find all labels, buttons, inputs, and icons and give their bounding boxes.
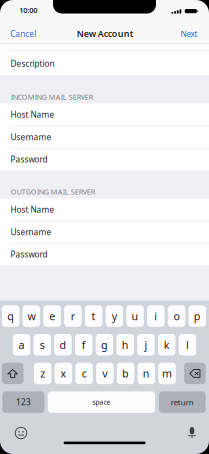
- staticText: u: [132, 309, 139, 323]
- button[interactable]: d: [54, 334, 72, 355]
- button[interactable]: t: [85, 305, 102, 327]
- staticText: Host Name: [11, 109, 55, 120]
- button[interactable]: o: [168, 305, 185, 327]
- staticText: l: [186, 337, 189, 352]
- staticText: t: [92, 309, 96, 323]
- staticText: e: [49, 309, 55, 323]
- button[interactable]: p: [189, 305, 206, 327]
- staticText: p: [194, 309, 201, 323]
- staticText: Next: [180, 28, 197, 39]
- staticText: y: [112, 309, 117, 323]
- button[interactable]: n: [138, 363, 155, 384]
- button[interactable]: w: [23, 305, 40, 327]
- staticText: c: [82, 366, 87, 381]
- staticText: a: [18, 337, 24, 352]
- staticText: z: [40, 366, 45, 381]
- button[interactable]: e: [43, 305, 61, 327]
- button[interactable]: a: [13, 334, 30, 355]
- staticText: v: [102, 366, 107, 381]
- staticText: INCOMING MAIL SERVER: [11, 92, 93, 102]
- staticText: Username: [11, 131, 52, 143]
- button[interactable]: f: [75, 334, 92, 355]
- button[interactable]: m: [158, 363, 176, 384]
- staticText: o: [174, 309, 180, 323]
- staticText: f: [82, 337, 86, 352]
- button[interactable]: h: [116, 334, 134, 355]
- button[interactable]: x: [55, 363, 72, 384]
- staticText: m: [162, 366, 172, 381]
- staticText: Description: [11, 58, 55, 69]
- staticText: i: [154, 309, 157, 323]
- button[interactable]: space: [48, 391, 155, 413]
- staticText: w: [27, 309, 35, 323]
- staticText: s: [40, 337, 45, 352]
- button[interactable]: s: [33, 334, 51, 355]
- button[interactable]: return: [159, 391, 206, 413]
- button[interactable]: i: [147, 305, 165, 327]
- staticText: 10:00: [19, 5, 37, 15]
- button[interactable]: y: [106, 305, 123, 327]
- button[interactable]: v: [96, 363, 114, 384]
- staticText: n: [143, 366, 150, 381]
- button[interactable]: j: [137, 334, 155, 355]
- staticText: d: [59, 337, 66, 352]
- button[interactable]: 123: [2, 391, 44, 413]
- staticText: g: [101, 337, 108, 352]
- button[interactable]: u: [126, 305, 144, 327]
- button[interactable]: q: [2, 305, 19, 327]
- staticText: return: [171, 397, 194, 407]
- staticText: OUTGOING MAIL SERVER: [11, 187, 95, 197]
- staticText: space: [92, 398, 110, 407]
- button[interactable]: Dictation: [185, 426, 199, 440]
- staticText: x: [60, 366, 66, 381]
- button[interactable]: Emoji keyboard: [13, 425, 29, 441]
- staticText: Username: [11, 226, 52, 238]
- button[interactable]: Shift: [2, 363, 23, 384]
- button[interactable]: Delete: [184, 363, 206, 384]
- button[interactable]: b: [117, 363, 134, 384]
- staticText: Host Name: [11, 204, 55, 215]
- button[interactable]: k: [158, 334, 175, 355]
- staticText: 123: [16, 396, 31, 408]
- button[interactable]: c: [75, 363, 93, 384]
- staticText: Cancel: [10, 28, 36, 39]
- staticText: Password: [11, 249, 48, 260]
- button[interactable]: g: [96, 334, 113, 355]
- button[interactable]: Cancel: [3, 24, 43, 44]
- staticText: q: [7, 309, 14, 323]
- button[interactable]: z: [34, 363, 51, 384]
- button[interactable]: r: [64, 305, 82, 327]
- staticText: h: [122, 337, 129, 352]
- staticText: New Account: [77, 27, 134, 40]
- staticText: r: [71, 309, 75, 323]
- staticText: b: [122, 366, 129, 381]
- staticText: k: [164, 337, 170, 352]
- button[interactable]: l: [179, 334, 196, 355]
- staticText: j: [144, 337, 147, 352]
- staticText: Password: [11, 154, 48, 165]
- button[interactable]: Next: [174, 24, 204, 44]
